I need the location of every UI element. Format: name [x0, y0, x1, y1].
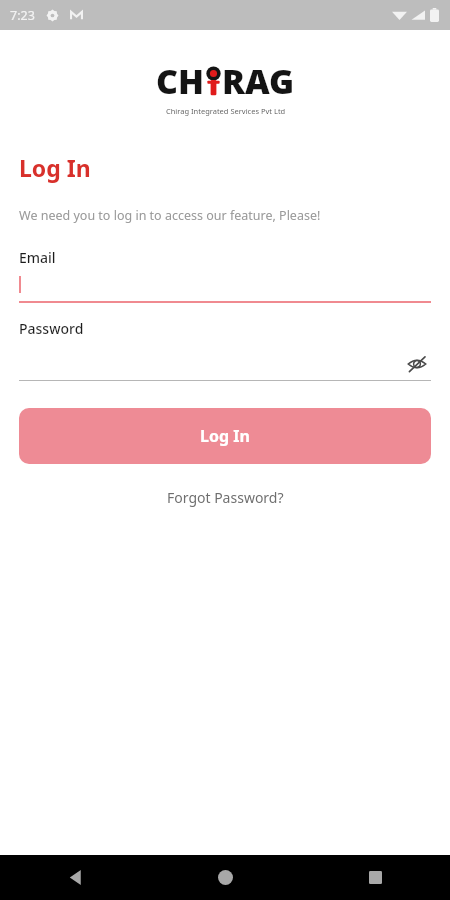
staticText: RAG	[222, 58, 295, 104]
button[interactable]: Show password	[403, 350, 431, 378]
staticText: Email	[19, 248, 56, 267]
staticText: Password	[19, 319, 84, 338]
staticText: We need you to log in to access our feat…	[19, 207, 321, 224]
button[interactable]: Show password	[19, 338, 431, 380]
staticText: 7:23	[10, 7, 35, 24]
button[interactable]: Recent apps	[300, 855, 450, 900]
staticText: Forgot Password?	[167, 488, 284, 507]
button[interactable]	[19, 267, 431, 303]
staticText: CH	[156, 58, 205, 104]
button[interactable]: Back	[0, 855, 150, 900]
button[interactable]: Forgot Password?	[157, 484, 294, 511]
staticText: Chirag Integrated Services Pvt Ltd	[166, 106, 286, 116]
button[interactable]: Home	[150, 855, 300, 900]
staticText: Log In	[200, 425, 250, 447]
staticText: Log In	[19, 152, 91, 183]
button[interactable]: Log In	[19, 408, 431, 464]
